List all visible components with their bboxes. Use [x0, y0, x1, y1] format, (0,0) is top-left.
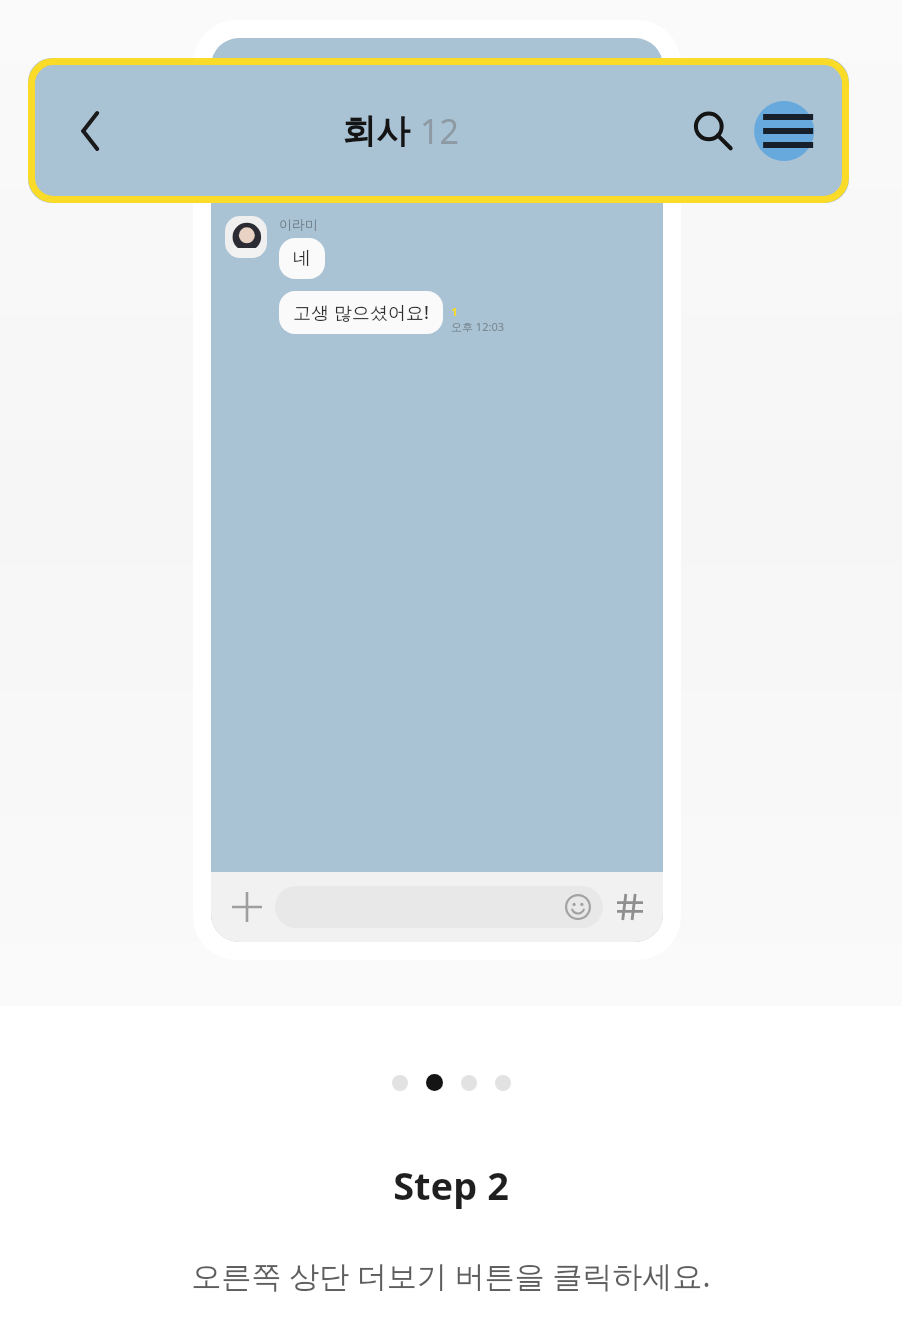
button[interactable]: More options: [751, 95, 823, 167]
button[interactable]: Page 1: [392, 1075, 408, 1091]
staticText: 이라미: [279, 216, 318, 232]
staticText: 회사: [342, 110, 410, 153]
button[interactable]: Add attachment: [227, 887, 267, 927]
button[interactable]: Hashtag: [613, 890, 647, 924]
staticText: 12: [420, 108, 459, 154]
staticText: 1: [451, 304, 458, 319]
button[interactable]: Message input: [275, 886, 603, 928]
staticText: 고생 많으셨어요!: [293, 300, 429, 325]
staticText: 오른쪽 상단 더보기 버튼을 클릭하세요.: [191, 1255, 711, 1296]
staticText: 네: [293, 247, 311, 270]
button[interactable]: Page 2: [426, 1074, 443, 1091]
button[interactable]: Search: [679, 98, 745, 164]
button[interactable]: Profile photo: [225, 216, 267, 258]
button[interactable]: Back: [58, 99, 122, 163]
button[interactable]: Page 3: [461, 1075, 477, 1091]
staticText: 오후 12:03: [451, 319, 504, 334]
button[interactable]: Page 4: [495, 1075, 511, 1091]
staticText: Step 2: [393, 1159, 509, 1211]
